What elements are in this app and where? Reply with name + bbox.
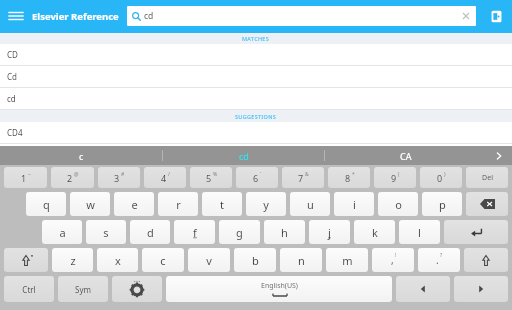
button[interactable]: . [418,248,460,272]
staticText: r [176,197,181,212]
staticText: m [342,253,353,268]
button[interactable]: Sym [58,276,108,302]
button[interactable]: s [86,220,126,244]
button[interactable]: cd [0,88,512,110]
button[interactable]: Move cursor left [396,276,450,302]
button[interactable]: 4 [144,167,186,188]
button[interactable]: , [372,248,414,272]
staticText: k [372,225,378,240]
staticText: Del [482,173,493,183]
button[interactable]: 1 [4,167,47,188]
button[interactable]: m [326,248,368,272]
button[interactable]: d [130,220,170,244]
button[interactable]: q [26,192,66,216]
button[interactable]: Ctrl [4,276,54,302]
button[interactable]: cd [127,6,476,26]
button[interactable]: l [399,220,440,244]
staticText: 50 [18,145,25,147]
button[interactable]: i [334,192,374,216]
button[interactable]: n [280,248,322,272]
button[interactable]: CD [0,44,512,66]
button[interactable]: u [290,192,330,216]
button[interactable]: Shift [4,248,48,272]
button[interactable]: o [378,192,418,216]
button[interactable]: 0 [420,167,462,188]
button[interactable]: 2 [51,167,94,188]
button[interactable]: b [234,248,276,272]
staticText: ! [395,252,397,259]
staticText: Cd [7,71,17,82]
staticText: e [131,197,138,212]
staticText: t [220,197,224,212]
button[interactable]: 5 [190,167,232,188]
button[interactable]: f [174,220,215,244]
button[interactable]: c [0,146,162,165]
staticText: w [86,197,95,212]
button[interactable]: k [354,220,395,244]
button[interactable]: Library [482,2,510,30]
button[interactable]: t [202,192,242,216]
staticText: & [305,171,309,178]
button[interactable]: e [114,192,154,216]
button[interactable]: CA [325,146,486,165]
button[interactable]: 8 [328,167,370,188]
staticText: a [59,225,66,240]
button[interactable]: Space [166,276,392,302]
staticText: b [252,253,259,268]
button[interactable]: 7 [282,167,324,188]
staticText: f [193,225,197,240]
staticText: CD4 [7,127,23,138]
button[interactable]: c [142,248,184,272]
staticText: , [391,253,394,267]
button[interactable]: Cd [0,66,512,88]
button[interactable]: Open navigation menu [0,0,32,32]
button[interactable]: g [219,220,260,244]
button[interactable]: x [97,248,138,272]
button[interactable]: z [52,248,93,272]
staticText: j [328,225,331,240]
button[interactable]: 9 [374,167,416,188]
staticText: n [298,253,305,268]
staticText: CA [400,150,412,162]
staticText: % [213,171,218,178]
button[interactable]: h [264,220,305,244]
staticText: ´ [260,171,262,178]
button[interactable]: w [70,192,110,216]
staticText: / [168,171,170,178]
button[interactable]: a [42,220,82,244]
button[interactable]: 6 [236,167,278,188]
button[interactable]: More suggestions [486,146,512,165]
button[interactable]: Backspace [466,192,508,216]
staticText: i [353,197,356,212]
button[interactable]: cd [163,146,324,165]
button[interactable]: p [422,192,462,216]
button[interactable]: 3 [98,167,140,188]
staticText: 2 [67,172,73,184]
button[interactable]: Del [466,167,508,188]
button[interactable]: Shift [464,248,508,272]
button[interactable]: Enter [444,220,508,244]
staticText: o [395,197,402,212]
button[interactable]: Keyboard settings [112,276,162,302]
staticText: g [236,225,243,240]
staticText: p [439,197,446,212]
staticText: 8 [345,172,351,184]
staticText: MATCHES [242,35,270,42]
staticText: 4 [161,172,167,184]
button[interactable]: CD4 [0,122,512,144]
staticText: 0 [437,172,443,184]
staticText: SUGGESTIONS [235,113,277,120]
button[interactable]: r [158,192,198,216]
staticText: q [43,197,50,212]
staticText: English(US) [261,281,298,291]
button[interactable]: y [246,192,286,216]
staticText: u [307,197,314,212]
button[interactable]: Clear search [456,6,476,26]
staticText: 7 [298,172,304,184]
button[interactable]: j [309,220,350,244]
staticText: d [147,225,154,240]
button[interactable]: v [188,248,230,272]
button[interactable]: Move cursor right [454,276,508,302]
